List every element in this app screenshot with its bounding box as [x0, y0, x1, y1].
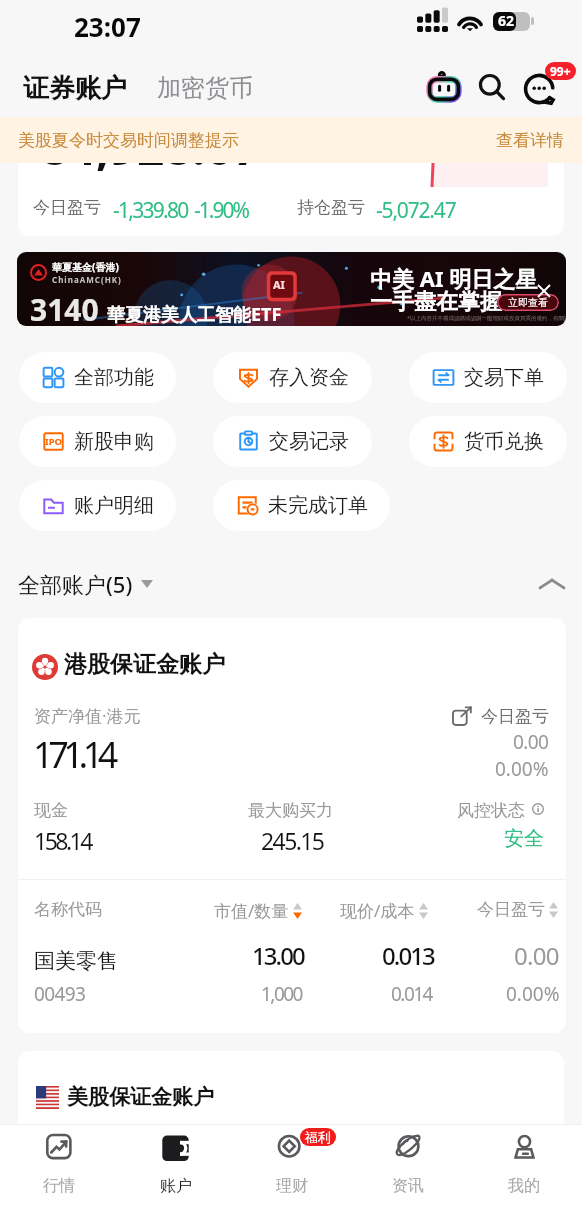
staticText: 62	[498, 11, 515, 30]
staticText: 245.15	[261, 825, 324, 856]
staticText: 最大购买力	[248, 800, 333, 821]
button[interactable]: 查看详情	[496, 130, 564, 151]
button[interactable]: 货币兑换	[409, 416, 567, 467]
staticText: 行情	[43, 1176, 75, 1196]
staticText: ChinaAMC(HK)	[52, 274, 122, 285]
staticText: 全部账户(5)	[18, 569, 133, 599]
staticText: 84,928.07	[41, 114, 261, 179]
button[interactable]: 今日盈亏	[477, 899, 558, 920]
button[interactable]: 市值/数量	[214, 899, 302, 922]
staticText: 99+	[550, 63, 571, 79]
staticText: 美股保证金账户	[67, 1084, 214, 1110]
staticText: 交易记录	[269, 429, 349, 454]
staticText: AI	[273, 277, 285, 292]
staticText: 23:07	[74, 9, 141, 44]
button[interactable]: 账户明细	[19, 480, 176, 531]
staticText: IPO	[45, 435, 63, 448]
button[interactable]: 交易记录	[213, 416, 372, 467]
button[interactable]: 港股保证金账户	[18, 618, 566, 1033]
staticText: 理财	[276, 1176, 308, 1196]
staticText: -1.90%	[194, 196, 248, 225]
button[interactable]: 立即查看	[497, 294, 559, 311]
button[interactable]: IPO	[19, 416, 176, 467]
staticText: 一手盡在掌握	[370, 288, 502, 316]
staticText: 未完成订单	[268, 493, 368, 518]
button[interactable]: 现价/成本	[340, 899, 428, 922]
staticText: 00493	[34, 981, 86, 1007]
staticText: 0.00%	[495, 756, 549, 782]
staticText: 港股保证金账户	[64, 650, 225, 679]
staticText: 风控状态	[457, 800, 525, 821]
staticText: 资讯	[392, 1176, 424, 1196]
button[interactable]: 资讯	[350, 1135, 466, 1196]
button[interactable]: Messages	[522, 69, 562, 109]
staticText: 存入资金	[269, 365, 349, 390]
staticText: 账户明细	[74, 493, 154, 518]
button[interactable]: 全部功能	[19, 352, 176, 403]
staticText: -5,072.47	[376, 196, 456, 225]
staticText: 今日盈亏	[33, 197, 101, 218]
staticText: 安全	[504, 826, 544, 851]
button[interactable]: 存入资金	[213, 352, 372, 403]
staticText: 立即查看	[508, 296, 548, 309]
button[interactable]: 交易下单	[409, 352, 567, 403]
staticText: 158.14	[34, 825, 91, 856]
staticText: 華夏基金(香港)	[52, 260, 119, 274]
staticText: 国美零售	[34, 948, 118, 974]
button[interactable]: Close ad	[538, 285, 550, 297]
button[interactable]: 福利	[234, 1135, 350, 1196]
button[interactable]: 加密货币	[157, 73, 253, 103]
staticText: 新股申购	[74, 429, 154, 454]
staticText: *以上內容幷不構成認購或認購一般理財或投資買賣的邀約，有關詳情請參閱該基金之銷售…	[407, 314, 566, 322]
staticText: 今日盈亏	[477, 899, 545, 920]
staticText: 美股夏令时交易时间调整提示	[18, 130, 239, 151]
staticText: 中美 AI 明日之星	[370, 263, 538, 293]
button[interactable]: 我的	[466, 1135, 582, 1196]
staticText: 0.00	[514, 939, 559, 972]
staticText: 0.00%	[506, 981, 560, 1007]
button[interactable]: 行情	[0, 1135, 117, 1196]
button[interactable]: 账户	[117, 1135, 234, 1196]
staticText: 今日盈亏	[481, 706, 549, 727]
staticText: 现金	[34, 800, 68, 821]
staticText: 账户	[160, 1176, 192, 1196]
staticText: 名称代码	[34, 899, 102, 920]
button[interactable]: 美股保证金账户	[18, 1051, 564, 1151]
staticText: 资产净值·港元	[34, 704, 141, 727]
staticText: 13.00	[252, 939, 304, 972]
staticText: 0.00	[513, 729, 549, 755]
staticText: 市值/数量	[214, 899, 289, 922]
button[interactable]: 未完成订单	[213, 480, 390, 531]
staticText: 171.14	[33, 730, 113, 779]
staticText: 3140	[30, 289, 99, 326]
button[interactable]: AI assistant	[426, 69, 462, 105]
staticText: 我的	[508, 1176, 540, 1196]
button[interactable]: 全部账户(5)	[18, 569, 153, 599]
button[interactable]: 证券账户	[23, 72, 127, 105]
staticText: 1,000	[261, 981, 302, 1007]
button[interactable]: Search	[474, 69, 510, 105]
staticText: -1,339.80	[113, 196, 188, 225]
staticText: 持仓盈亏	[297, 197, 365, 218]
staticText: 0.013	[382, 939, 434, 972]
staticText: 货币兑换	[464, 429, 544, 454]
staticText: 華夏港美人工智能ETF	[107, 302, 282, 326]
staticText: 0.014	[391, 981, 432, 1007]
button[interactable]: AI	[17, 252, 566, 326]
staticText: 全部功能	[74, 365, 154, 390]
staticText: 福利	[305, 1129, 331, 1145]
staticText: 现价/成本	[340, 899, 415, 922]
staticText: 交易下单	[464, 365, 544, 390]
button[interactable]: Collapse	[540, 577, 564, 591]
